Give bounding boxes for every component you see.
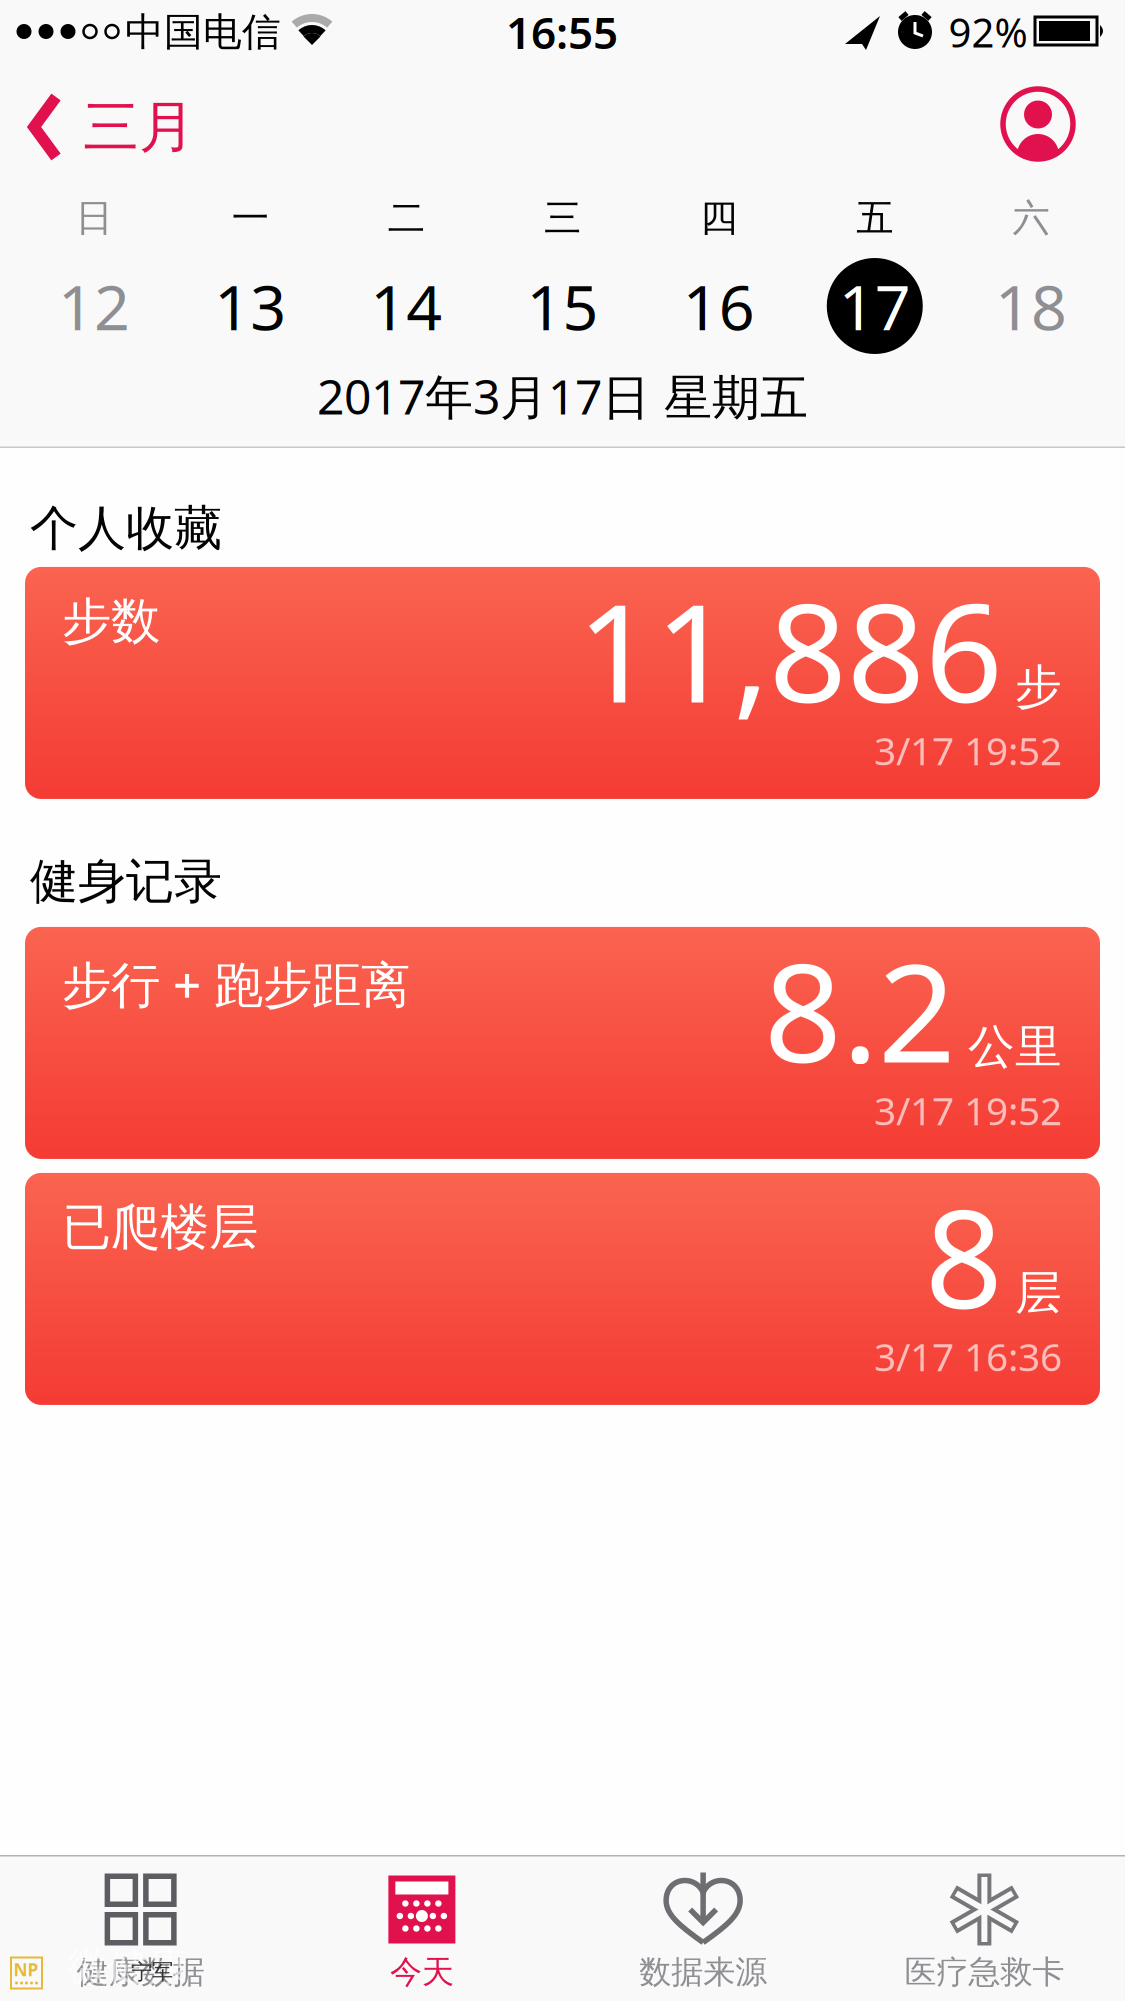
staticText: 三月 [83, 93, 195, 161]
staticText: 三 [544, 195, 581, 241]
staticText: 健身记录 [30, 852, 222, 911]
staticText: 3/17 19:52 [874, 725, 1062, 776]
button[interactable]: 已爬楼层 [25, 1173, 1100, 1405]
staticText: 微健康 [68, 1942, 188, 1991]
button[interactable]: 个人资料 [1002, 88, 1074, 160]
button[interactable]: 三月 [29, 91, 195, 163]
staticText: 一 [232, 195, 269, 241]
staticText: 层 [1015, 1264, 1062, 1321]
staticText: 数据来源 [639, 1952, 767, 1992]
button[interactable]: 健康数据 [0, 1856, 281, 2001]
staticText: 13 [214, 264, 286, 348]
staticText: 17 [839, 264, 911, 348]
staticText: 宁军 [131, 1959, 173, 1985]
staticText: 已爬楼层 [62, 1197, 258, 1257]
staticText: 3/17 19:52 [874, 1085, 1062, 1136]
staticText: 11,886 [577, 559, 1003, 740]
button[interactable]: 12 [16, 246, 172, 366]
button[interactable]: 13 [172, 246, 328, 366]
staticText: 12 [58, 264, 130, 348]
staticText: 步数 [62, 591, 160, 652]
staticText: 医疗急救卡 [904, 1952, 1064, 1992]
staticText: 四 [700, 195, 737, 241]
button[interactable]: 医疗急救卡 [844, 1856, 1125, 2001]
staticText: 日 [76, 195, 113, 241]
staticText: 六 [1012, 195, 1049, 241]
staticText: 步行 + 跑步距离 [62, 951, 410, 1016]
button[interactable]: 15 [484, 246, 640, 366]
staticText: 18 [995, 264, 1067, 348]
staticText: 8.2 [764, 919, 956, 1100]
button[interactable]: 17 [797, 246, 953, 366]
staticText: 16:55 [506, 3, 618, 61]
staticText: 92% [948, 5, 1027, 58]
staticText: 个人收藏 [30, 499, 222, 558]
staticText: 五 [856, 195, 893, 241]
staticText: 二 [388, 195, 425, 241]
button[interactable]: 步数 [25, 567, 1100, 799]
button[interactable]: 数据来源 [562, 1856, 844, 2001]
staticText: 14 [370, 264, 442, 348]
staticText: 步 [1015, 658, 1062, 715]
button[interactable]: 16 [641, 246, 797, 366]
button[interactable]: 14 [328, 246, 484, 366]
staticText: 今天 [390, 1952, 454, 1992]
staticText: 8 [925, 1165, 1003, 1346]
staticText: 3/17 16:36 [874, 1331, 1062, 1382]
button[interactable]: 步行 + 跑步距离 [25, 927, 1100, 1159]
button[interactable]: 今天 [281, 1856, 562, 2001]
staticText: 15 [526, 264, 598, 348]
staticText: 公里 [968, 1018, 1062, 1075]
staticText: 16 [683, 264, 755, 348]
staticText: NP [13, 1958, 38, 1981]
button[interactable]: 18 [953, 246, 1109, 366]
staticText: 健康数据 [77, 1952, 205, 1992]
staticText: 中国电信 [125, 8, 281, 56]
staticText: 2017年3月17日 星期五 [317, 364, 808, 428]
